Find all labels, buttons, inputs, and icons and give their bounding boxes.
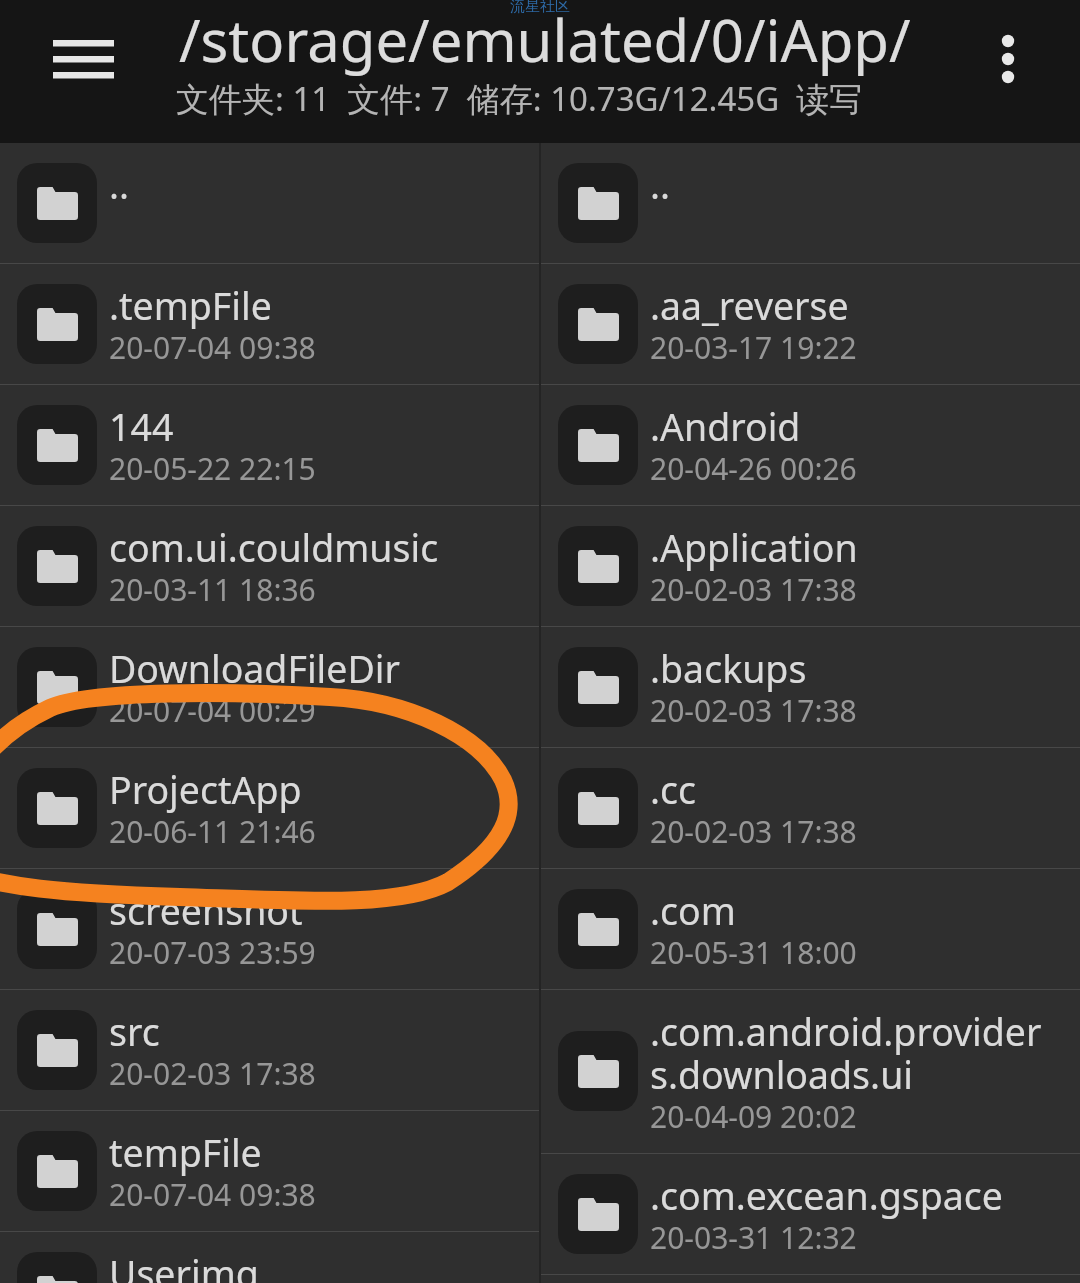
staticText: .backups [650,649,807,692]
staticText: 20-06-11 21:46 [109,813,316,851]
staticText: 20-05-22 22:15 [109,450,316,488]
staticText: 20-03-31 12:32 [650,1219,857,1257]
button[interactable]: src [0,990,539,1111]
button[interactable]: .com.excean.gspace [541,1154,1080,1275]
staticText: 20-04-26 00:26 [650,450,857,488]
staticText: 20-02-03 17:38 [109,1055,316,1093]
staticText: 20-04-09 20:02 [650,1098,857,1136]
staticText: com.ui.couldmusic [109,528,439,571]
staticText: DownloadFileDir [109,649,400,692]
staticText: 20-07-04 00:29 [109,692,316,730]
staticText: .com.android.providers.downloads.ui [650,1012,1048,1098]
button[interactable]: ProjectApp [0,748,539,869]
button[interactable]: Menu [36,14,132,110]
button[interactable]: More options [964,4,1060,100]
staticText: screenshot [109,891,303,934]
staticText: Userimg [109,1254,259,1283]
staticText: 20-07-04 09:38 [109,1176,316,1214]
button[interactable]: 144 [0,385,539,506]
staticText: 20-07-04 09:38 [109,329,316,367]
staticText: .. [109,165,130,208]
button[interactable]: .tempFile [0,264,539,385]
button[interactable]: .. [0,143,539,264]
button[interactable]: com.ui.couldmusic [0,506,539,627]
staticText: .Android [650,407,801,450]
staticText: /storage/emulated/0/iApp/ [179,0,911,79]
button[interactable]: DownloadFileDir [0,627,539,748]
staticText: tempFile [109,1133,262,1176]
button[interactable]: .com.android.providers.downloads.ui [541,990,1080,1154]
staticText: 20-02-03 17:38 [650,692,857,730]
button[interactable]: tempFile [0,1111,539,1232]
staticText: 20-05-31 18:00 [650,934,857,972]
button[interactable]: .cc [541,748,1080,869]
staticText: .Application [650,528,858,571]
staticText: .com.excean.gspace [650,1176,1004,1219]
button[interactable]: .Application [541,506,1080,627]
staticText: .com [650,891,736,934]
staticText: 144 [109,407,174,450]
staticText: .. [650,165,671,208]
staticText: 20-07-03 23:59 [109,934,316,972]
staticText: .tempFile [109,286,272,329]
staticText: 文件夹: 11 文件: 7 储存: 10.73G/12.45G 读写 [176,76,863,121]
staticText: 20-03-11 18:36 [109,571,316,609]
button[interactable]: .Android [541,385,1080,506]
staticText: 20-02-03 17:38 [650,571,857,609]
button[interactable]: .. [541,143,1080,264]
button[interactable]: .aa_reverse [541,264,1080,385]
button[interactable]: .com [541,869,1080,990]
staticText: src [109,1012,160,1055]
staticText: 流星社区 [510,0,570,16]
staticText: ProjectApp [109,770,302,813]
staticText: 20-02-03 17:38 [650,813,857,851]
staticText: .aa_reverse [650,286,849,329]
button[interactable]: .backups [541,627,1080,748]
button[interactable]: Userimg [0,1232,539,1283]
staticText: .cc [650,770,697,813]
button[interactable]: screenshot [0,869,539,990]
staticText: 20-03-17 19:22 [650,329,857,367]
